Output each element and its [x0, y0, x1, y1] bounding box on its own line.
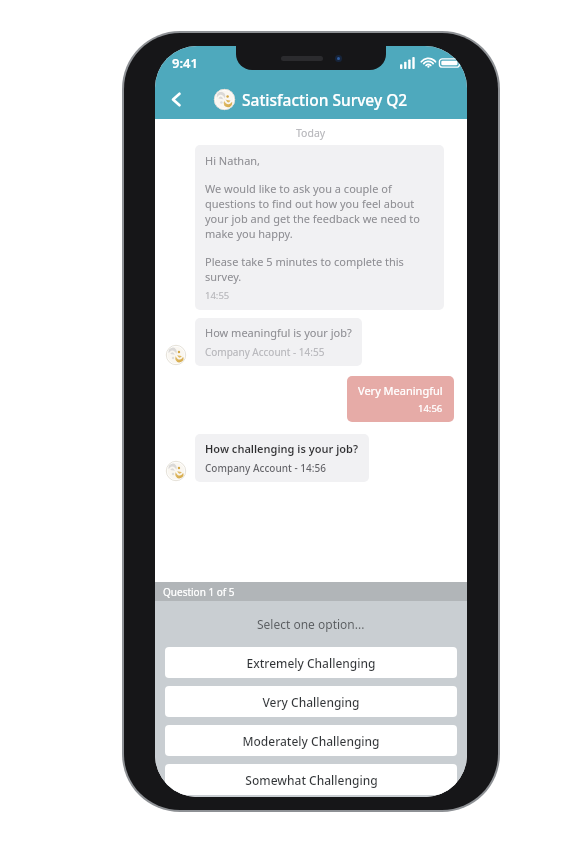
- button[interactable]: Back: [155, 79, 197, 119]
- button[interactable]: Very Meaningful: [347, 376, 454, 422]
- staticText: Hi Nathan,: [205, 153, 261, 168]
- button[interactable]: Somewhat Challenging: [165, 764, 457, 795]
- button[interactable]: How challenging is your job?: [195, 434, 369, 482]
- staticText: 14:55: [205, 289, 230, 302]
- staticText: Please take 5 minutes to complete this s…: [205, 254, 434, 284]
- button[interactable]: Very Challenging: [165, 686, 457, 717]
- other: Company logo: [166, 461, 186, 481]
- staticText: 9:41: [172, 54, 198, 72]
- button[interactable]: How meaningful is your job?: [195, 318, 362, 366]
- staticText: Question 1 of 5: [163, 585, 235, 599]
- staticText: 14:56: [418, 402, 443, 415]
- button[interactable]: Hi Nathan,: [195, 145, 444, 310]
- staticText: We would like to ask you a couple of que…: [205, 181, 434, 241]
- button[interactable]: Question 1 of 5: [155, 582, 467, 601]
- staticText: Extremely Challenging: [246, 655, 376, 671]
- staticText: Very Meaningful: [358, 383, 443, 398]
- staticText: How meaningful is your job?: [205, 325, 352, 340]
- staticText: Satisfaction Survey Q2: [242, 89, 408, 110]
- staticText: Today: [296, 126, 326, 140]
- staticText: Company Account - 14:55: [205, 345, 325, 359]
- staticText: Select one option...: [257, 616, 365, 632]
- staticText: Moderately Challenging: [242, 733, 380, 749]
- staticText: Company Account - 14:56: [205, 461, 326, 475]
- other: Company logo: [214, 89, 235, 110]
- button[interactable]: Moderately Challenging: [165, 725, 457, 756]
- staticText: How challenging is your job?: [205, 441, 359, 456]
- staticText: Somewhat Challenging: [245, 772, 378, 788]
- staticText: Very Challenging: [262, 694, 360, 710]
- other: Company logo: [166, 345, 186, 365]
- button[interactable]: Extremely Challenging: [165, 647, 457, 678]
